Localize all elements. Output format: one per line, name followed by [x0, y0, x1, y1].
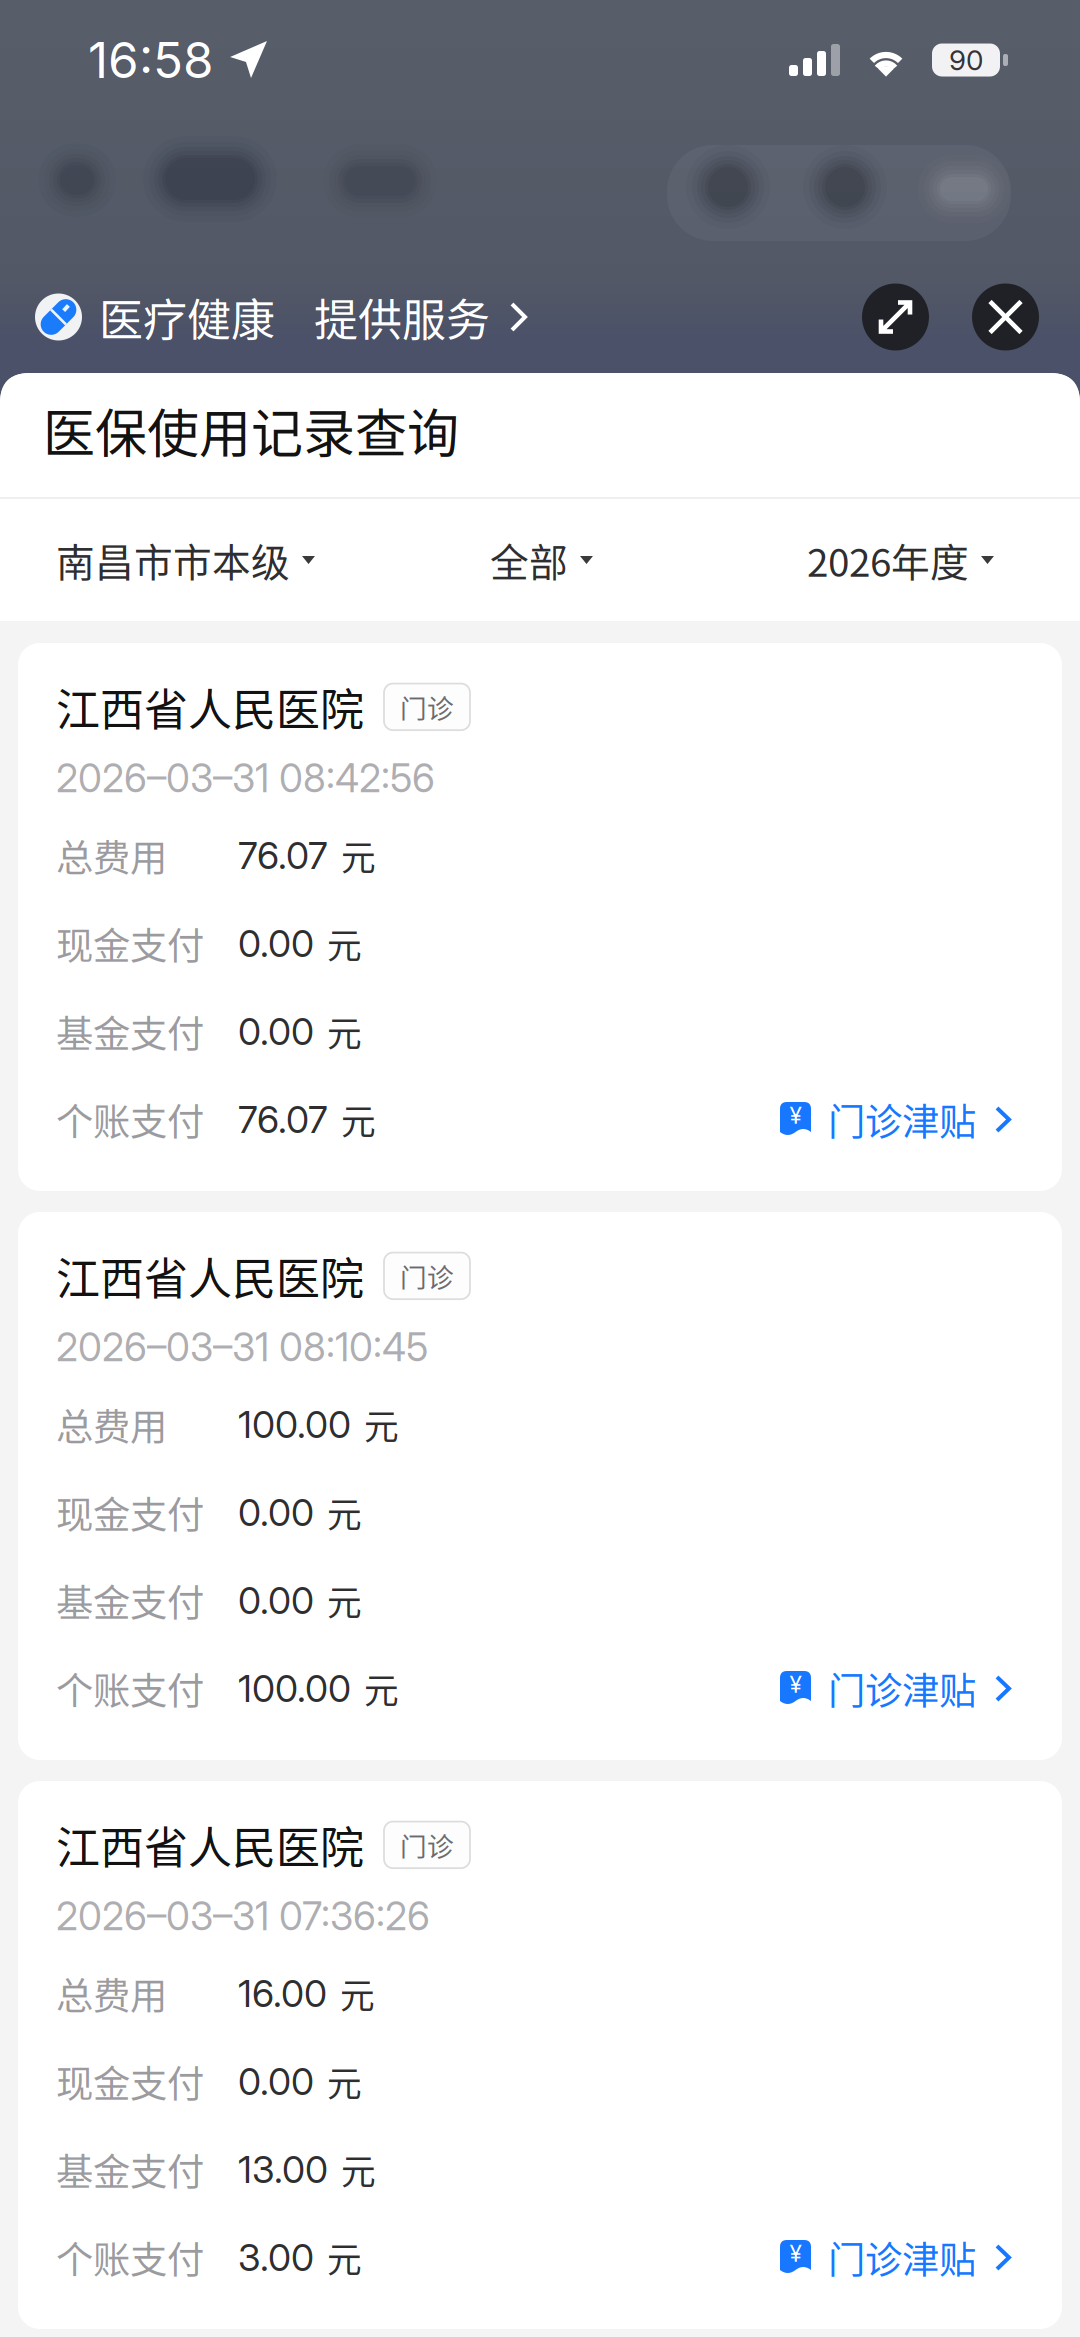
staticText: 江西省人民医院	[56, 1813, 364, 1877]
staticText: ¥	[789, 2240, 801, 2267]
staticText: 门诊	[400, 1825, 454, 1864]
staticText: 总费用	[56, 1397, 167, 1452]
staticText: 元	[327, 2056, 362, 2107]
staticText: ¥	[789, 1671, 801, 1698]
staticText: 元	[364, 1399, 399, 1450]
staticText: 元	[327, 1006, 362, 1057]
staticText: 2026–03–31 08:10:45	[56, 1324, 428, 1370]
staticText: ¥	[789, 1102, 801, 1129]
staticText: 总费用	[56, 828, 167, 883]
staticText: 0.00	[238, 921, 314, 966]
staticText: 元	[327, 2232, 362, 2283]
staticText: 元	[341, 830, 376, 881]
button[interactable]: ¥	[780, 2230, 1011, 2285]
staticText: 总费用	[56, 1966, 167, 2021]
staticText: 现金支付	[56, 2054, 204, 2109]
staticText: 个账支付	[56, 1092, 204, 1147]
staticText: 76.07	[238, 1097, 328, 1142]
button[interactable]: 2026年度	[807, 532, 994, 588]
staticText: 南昌市市本级	[56, 532, 290, 588]
button[interactable]: 全部	[490, 532, 593, 588]
staticText: 元	[327, 1575, 362, 1626]
staticText: 0.00	[238, 1578, 314, 1623]
staticText: 门诊津贴	[828, 2230, 976, 2285]
staticText: 90	[949, 43, 983, 77]
button[interactable]: ¥	[780, 1092, 1011, 1147]
staticText: 基金支付	[56, 2142, 204, 2197]
button[interactable]: 南昌市市本级	[56, 532, 315, 588]
staticText: 基金支付	[56, 1573, 204, 1628]
staticText: 江西省人民医院	[56, 1244, 364, 1308]
staticText: 门诊	[400, 687, 454, 726]
staticText: 门诊	[400, 1256, 454, 1295]
staticText: 医疗健康	[99, 285, 275, 349]
staticText: 元	[340, 1968, 375, 2019]
staticText: 元	[327, 918, 362, 969]
staticText: 提供服务	[314, 285, 490, 349]
staticText: 门诊津贴	[828, 1092, 976, 1147]
staticText: 0.00	[238, 1009, 314, 1054]
staticText: 全部	[490, 532, 568, 588]
staticText: 医保使用记录查询	[43, 392, 459, 468]
staticText: 0.00	[238, 2059, 314, 2104]
button[interactable]: Close	[972, 283, 1039, 350]
staticText: 13.00	[238, 2147, 328, 2192]
button[interactable]: 医疗健康	[35, 285, 275, 349]
staticText: 元	[327, 1487, 362, 1538]
staticText: 100.00	[238, 1666, 351, 1711]
staticText: 个账支付	[56, 1661, 204, 1716]
staticText: 门诊津贴	[828, 1661, 976, 1716]
staticText: 元	[341, 2144, 376, 2195]
button[interactable]: 提供服务	[275, 285, 527, 349]
staticText: 元	[341, 1094, 376, 1145]
staticText: 现金支付	[56, 1485, 204, 1540]
button[interactable]: ¥	[780, 1661, 1011, 1716]
staticText: 现金支付	[56, 916, 204, 971]
button[interactable]: Expand	[862, 283, 929, 350]
staticText: 2026年度	[807, 532, 969, 588]
staticText: 个账支付	[56, 2230, 204, 2285]
staticText: 16:58	[88, 30, 214, 90]
staticText: 2026–03–31 08:42:56	[56, 755, 435, 801]
staticText: 76.07	[238, 833, 328, 878]
staticText: 16.00	[238, 1971, 327, 2016]
staticText: 江西省人民医院	[56, 675, 364, 739]
staticText: 100.00	[238, 1402, 351, 1447]
staticText: 基金支付	[56, 1004, 204, 1059]
staticText: 元	[364, 1663, 399, 1714]
staticText: 0.00	[238, 1490, 314, 1535]
staticText: 2026–03–31 07:36:26	[56, 1893, 430, 1939]
staticText: 3.00	[238, 2235, 314, 2280]
